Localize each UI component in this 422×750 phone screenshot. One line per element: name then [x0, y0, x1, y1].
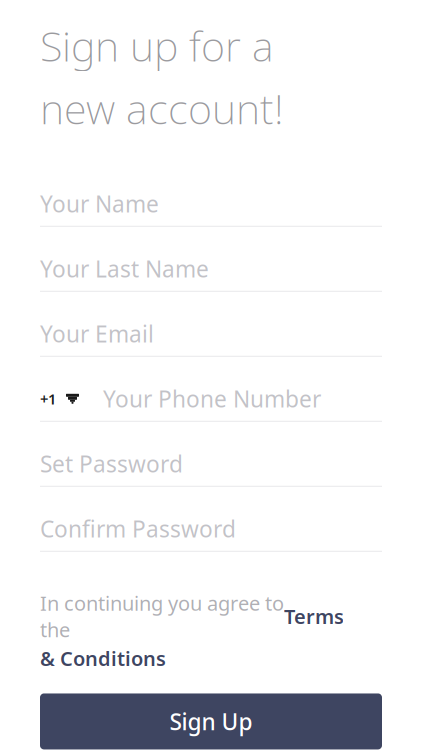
staticText: Confirm Password	[40, 514, 236, 544]
staticText: Your Last Name	[40, 254, 209, 284]
staticText: Sign up for a	[40, 18, 274, 73]
staticText: Set Password	[40, 449, 183, 479]
button[interactable]: Select country code	[40, 389, 79, 408]
staticText: & Conditions	[40, 645, 166, 671]
staticText: Your Phone Number	[103, 384, 321, 414]
staticText: +1	[40, 389, 56, 408]
staticText: In continuing you agree to the	[40, 590, 284, 643]
staticText: Sign Up	[169, 706, 252, 736]
staticText: Your Name	[40, 189, 159, 219]
staticText: new account!	[40, 81, 284, 136]
button[interactable]: In continuing you agree to the	[0, 572, 422, 671]
staticText: Terms	[284, 603, 344, 630]
staticText: Your Email	[40, 319, 154, 349]
button[interactable]: Sign Up	[40, 693, 382, 749]
